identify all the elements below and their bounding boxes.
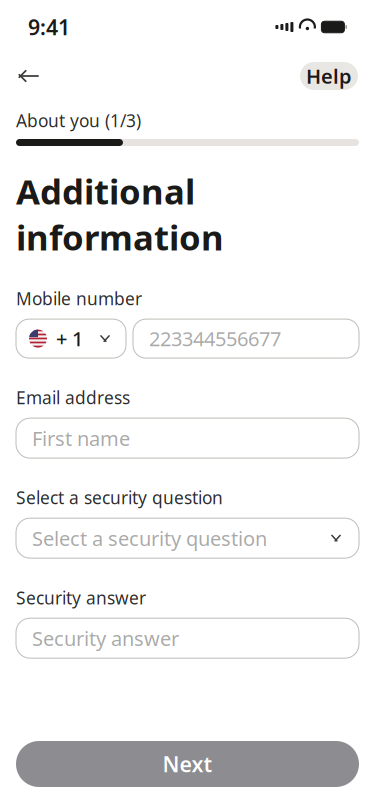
- staticText: Security answer: [16, 586, 146, 609]
- button[interactable]: 223344556677: [133, 319, 359, 358]
- staticText: Mobile number: [16, 287, 142, 310]
- button[interactable]: First name: [16, 418, 359, 458]
- staticText: Additional information: [16, 168, 224, 260]
- button[interactable]: Next: [16, 741, 359, 787]
- staticText: + 1: [56, 325, 83, 352]
- staticText: First name: [32, 425, 130, 451]
- staticText: Email address: [16, 386, 130, 409]
- staticText: Next: [162, 750, 212, 778]
- button[interactable]: Security answer: [16, 618, 359, 658]
- staticText: 9:41: [28, 13, 70, 41]
- staticText: Help: [306, 63, 352, 89]
- staticText: Select a security question: [16, 486, 223, 509]
- staticText: 223344556677: [149, 325, 281, 352]
- button[interactable]: Back: [6, 58, 50, 94]
- staticText: Security answer: [32, 625, 179, 651]
- button[interactable]: Select country calling code: [16, 319, 126, 358]
- button[interactable]: Help: [300, 62, 358, 90]
- button[interactable]: Select a security question: [16, 518, 359, 558]
- staticText: About you (1/3): [16, 109, 141, 132]
- staticText: Select a security question: [32, 525, 267, 551]
